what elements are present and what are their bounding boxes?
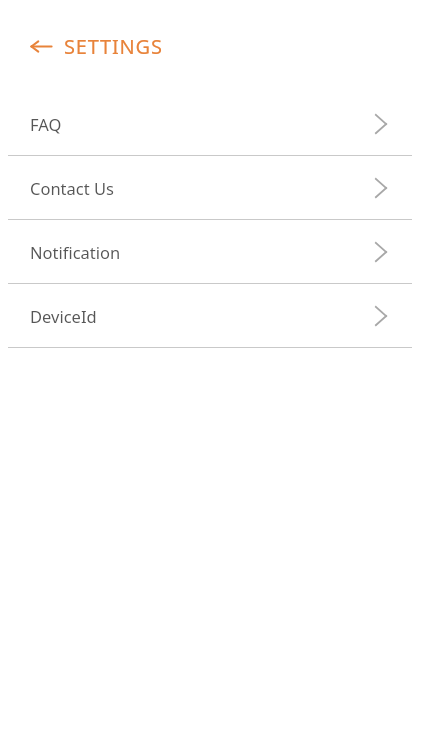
staticText: Notification <box>30 241 121 263</box>
staticText: Contact Us <box>30 177 114 199</box>
staticText: DeviceId <box>30 305 97 327</box>
button[interactable]: Notification <box>0 220 422 283</box>
button[interactable]: Back <box>26 31 56 61</box>
staticText: SETTINGS <box>64 33 163 60</box>
button[interactable]: FAQ <box>0 92 422 155</box>
button[interactable]: Contact Us <box>0 156 422 219</box>
button[interactable]: DeviceId <box>0 284 422 347</box>
staticText: FAQ <box>30 113 62 135</box>
